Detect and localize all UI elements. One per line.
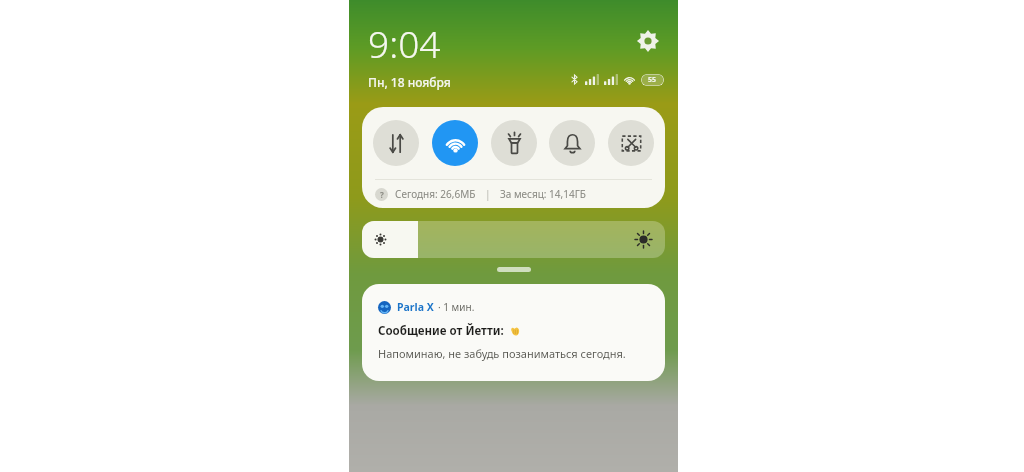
staticText: Пн, 18 ноября — [368, 74, 451, 90]
staticText: 9:04 — [368, 18, 441, 68]
staticText: Parla X — [397, 300, 434, 314]
button[interactable]: Mobile data — [373, 120, 419, 166]
button[interactable]: Wi-Fi — [432, 120, 478, 166]
button[interactable]: Ring mode — [549, 120, 595, 166]
staticText: · 1 мин. — [438, 300, 475, 314]
staticText: Напоминаю, не забудь позаниматься сегодн… — [378, 346, 626, 361]
button[interactable]: Parla X — [362, 284, 665, 381]
button[interactable]: Settings — [636, 29, 660, 53]
staticText: | — [485, 187, 491, 201]
button[interactable]: Flashlight — [491, 120, 537, 166]
button[interactable]: Screenshot — [608, 120, 654, 166]
button[interactable]: Brightness — [362, 221, 665, 258]
staticText: Сегодня: 26,6МБ — [395, 187, 476, 201]
staticText: За месяц: 14,14ГБ — [500, 187, 586, 201]
staticText: Сообщение от Йетти: — [378, 323, 504, 339]
staticText: 55 — [648, 75, 657, 85]
staticText: ? — [380, 189, 384, 200]
